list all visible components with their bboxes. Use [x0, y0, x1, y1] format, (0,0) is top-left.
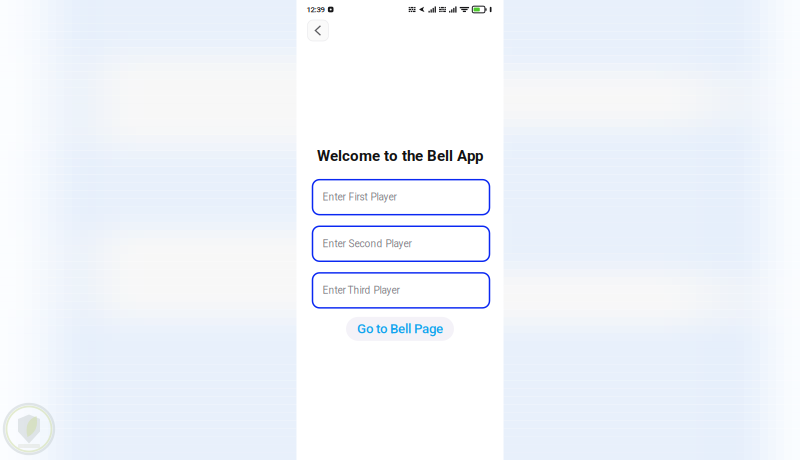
staticText: 12:39 [306, 5, 324, 14]
staticText: Welcome to the Bell App [317, 147, 483, 165]
staticText: Go to Bell Page [357, 321, 443, 337]
staticText: Enter Second Player [322, 238, 411, 250]
button[interactable]: Go to Bell Page [346, 317, 454, 341]
button[interactable]: Back [307, 20, 328, 41]
staticText: Enter Third Player [322, 284, 399, 296]
staticText: Enter First Player [322, 191, 396, 203]
button[interactable]: Enter First Player [312, 180, 489, 215]
button[interactable]: Enter Second Player [312, 226, 489, 261]
button[interactable]: Enter Third Player [312, 273, 489, 308]
